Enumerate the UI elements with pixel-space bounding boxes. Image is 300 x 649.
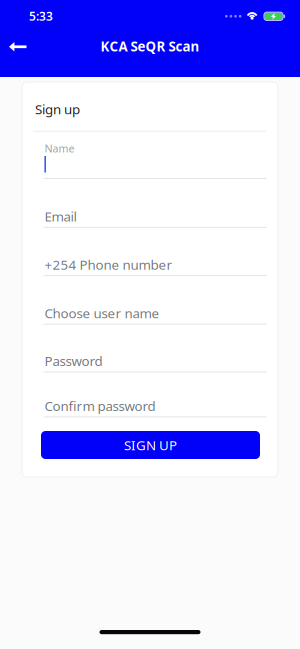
staticText: Name [44, 141, 74, 155]
staticText: +254 Phone number [44, 256, 172, 273]
staticText: Email [44, 207, 76, 225]
staticText: Sign up [35, 100, 80, 118]
button[interactable]: Name [43, 141, 266, 179]
button[interactable]: Password [43, 352, 266, 372]
button[interactable]: Confirm password [43, 397, 266, 417]
button[interactable] [0, 0, 36, 61]
button[interactable]: +254 Phone number [43, 256, 266, 276]
button[interactable]: Choose user name [43, 304, 266, 325]
button[interactable]: Email [43, 207, 266, 228]
staticText: Confirm password [44, 397, 155, 415]
staticText: Choose user name [44, 304, 159, 322]
staticText: SIGN UP [124, 436, 177, 454]
button[interactable]: SIGN UP [41, 431, 260, 459]
staticText: KCA SeQR Scan [100, 37, 199, 55]
staticText: Password [44, 352, 102, 370]
staticText: 5:33 [29, 8, 53, 24]
